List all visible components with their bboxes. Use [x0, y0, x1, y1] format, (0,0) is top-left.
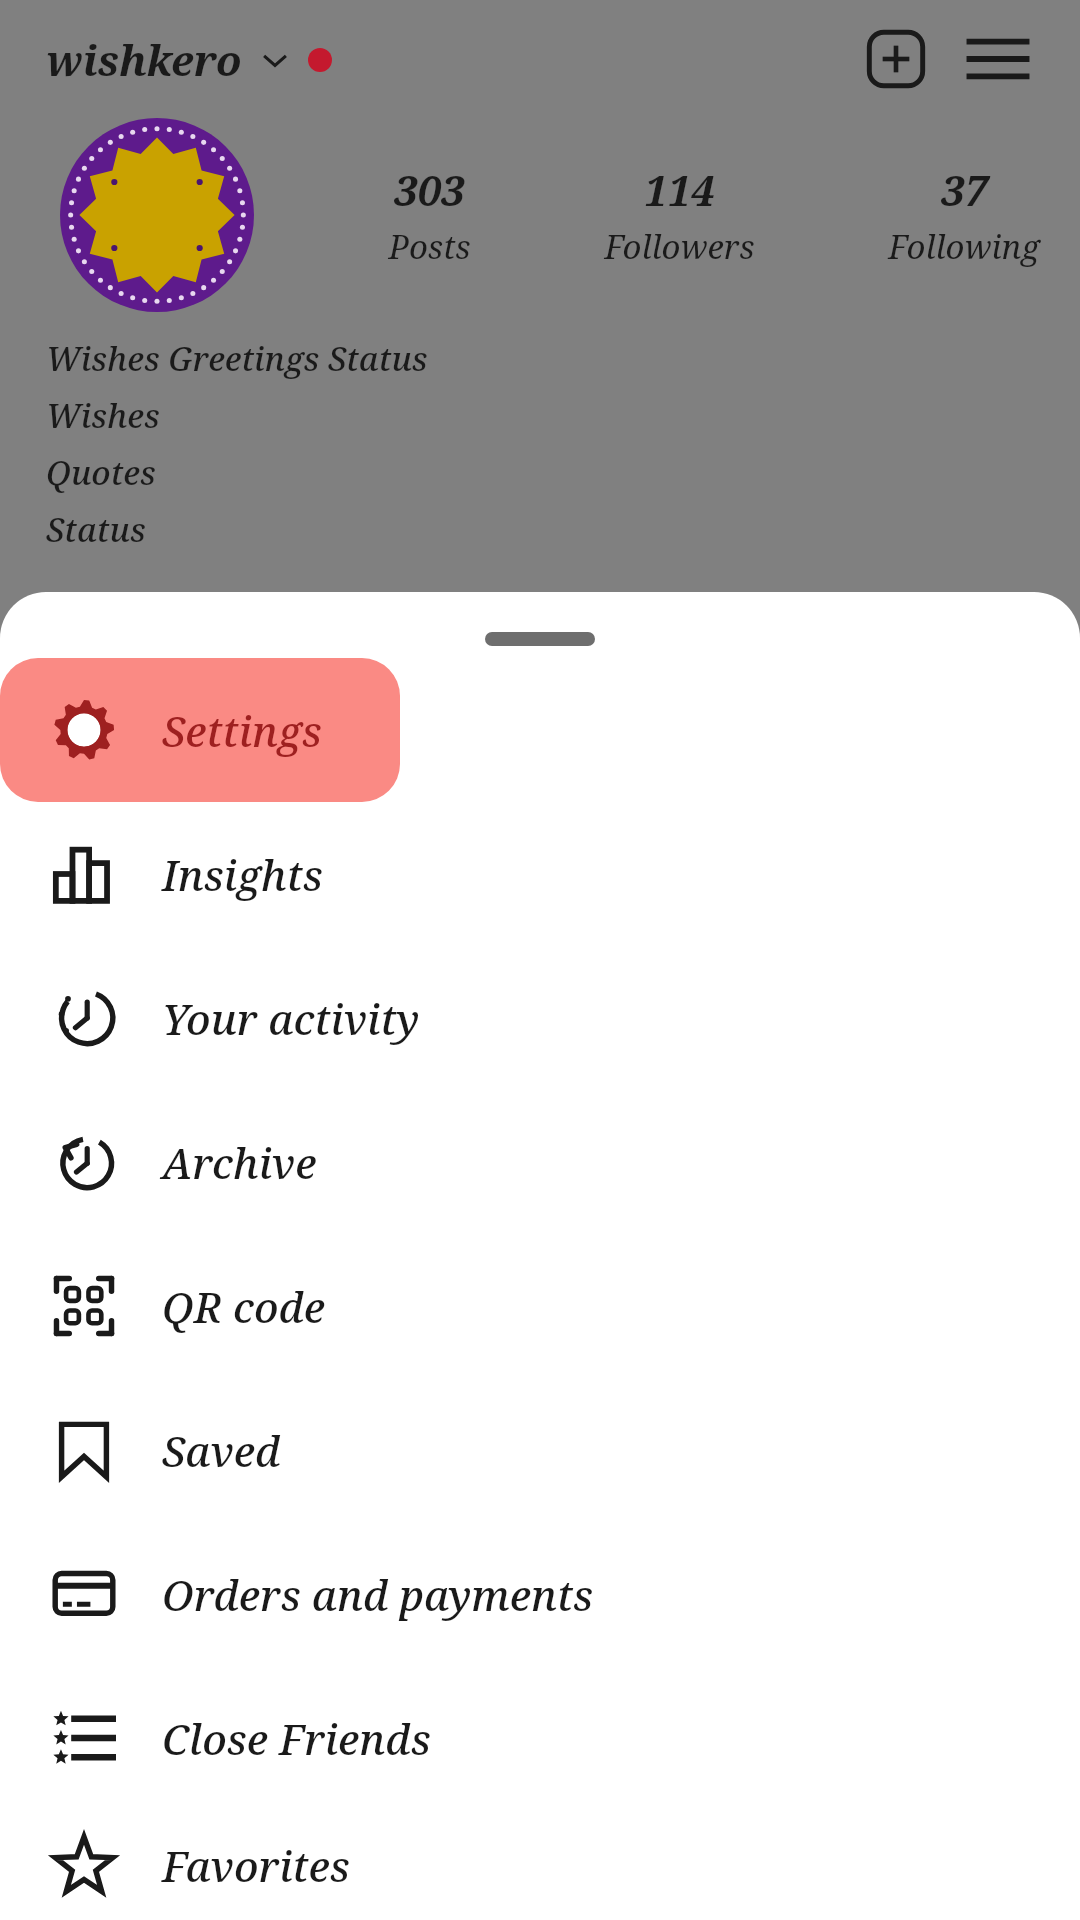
staticText: 114: [644, 161, 715, 218]
button[interactable]: QR code: [0, 1234, 1080, 1378]
button[interactable]: 37: [888, 161, 1040, 269]
staticText: Status: [46, 507, 146, 552]
staticText: Quotes: [46, 450, 156, 495]
staticText: Close Friends: [162, 1710, 431, 1767]
button[interactable]: Menu: [952, 13, 1044, 105]
staticText: Following: [888, 224, 1040, 269]
staticText: Posts: [388, 224, 471, 269]
staticText: QR code: [162, 1278, 326, 1335]
staticText: Your activity: [162, 990, 420, 1047]
button[interactable]: 114: [604, 161, 755, 269]
button[interactable]: Settings: [0, 658, 1080, 802]
staticText: Saved: [162, 1422, 281, 1479]
button[interactable]: Insights: [0, 802, 1080, 946]
button[interactable]: Archive: [0, 1090, 1080, 1234]
staticText: Favorites: [162, 1837, 350, 1894]
button[interactable]: wishkero: [46, 31, 332, 88]
button[interactable]: New post: [850, 13, 942, 105]
button[interactable]: Close Friends: [0, 1666, 1080, 1810]
button[interactable]: [60, 118, 254, 312]
staticText: 37: [941, 161, 988, 218]
staticText: Wishes Greetings Status: [46, 336, 428, 381]
staticText: 303: [394, 161, 465, 218]
staticText: wishkero: [46, 31, 242, 88]
button[interactable]: Saved: [0, 1378, 1080, 1522]
staticText: Archive: [162, 1134, 317, 1191]
staticText: Wishes: [46, 393, 160, 438]
staticText: Orders and payments: [162, 1566, 594, 1623]
staticText: Settings: [162, 702, 322, 759]
button[interactable]: Your activity: [0, 946, 1080, 1090]
staticText: Insights: [162, 846, 323, 903]
staticText: Followers: [604, 224, 755, 269]
button[interactable]: Orders and payments: [0, 1522, 1080, 1666]
button[interactable]: Favorites: [0, 1810, 1080, 1920]
button[interactable]: 303: [388, 161, 471, 269]
